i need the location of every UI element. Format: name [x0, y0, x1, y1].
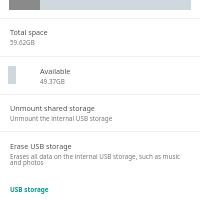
- staticText: Erase USB storage: [10, 141, 72, 151]
- staticText: Erases all data on the internal USB stor…: [10, 152, 187, 167]
- staticText: Total space: [10, 27, 48, 37]
- staticText: Available: [40, 66, 71, 76]
- staticText: Unmount the internal USB storage: [10, 114, 113, 123]
- staticText: USB storage: [10, 185, 49, 194]
- button[interactable]: Total space: [0, 19, 200, 56]
- button[interactable]: Unmount shared storage: [0, 95, 200, 131]
- staticText: 49.37GB: [40, 77, 65, 86]
- staticText: Unmount shared storage: [10, 103, 95, 113]
- button[interactable]: USB storage: [0, 180, 200, 198]
- other: Storage usage: 17% used: [9, 0, 191, 10]
- button[interactable]: Erase USB storage: [0, 132, 200, 175]
- button[interactable]: Available: [0, 57, 200, 94]
- staticText: 59.62GB: [10, 38, 35, 47]
